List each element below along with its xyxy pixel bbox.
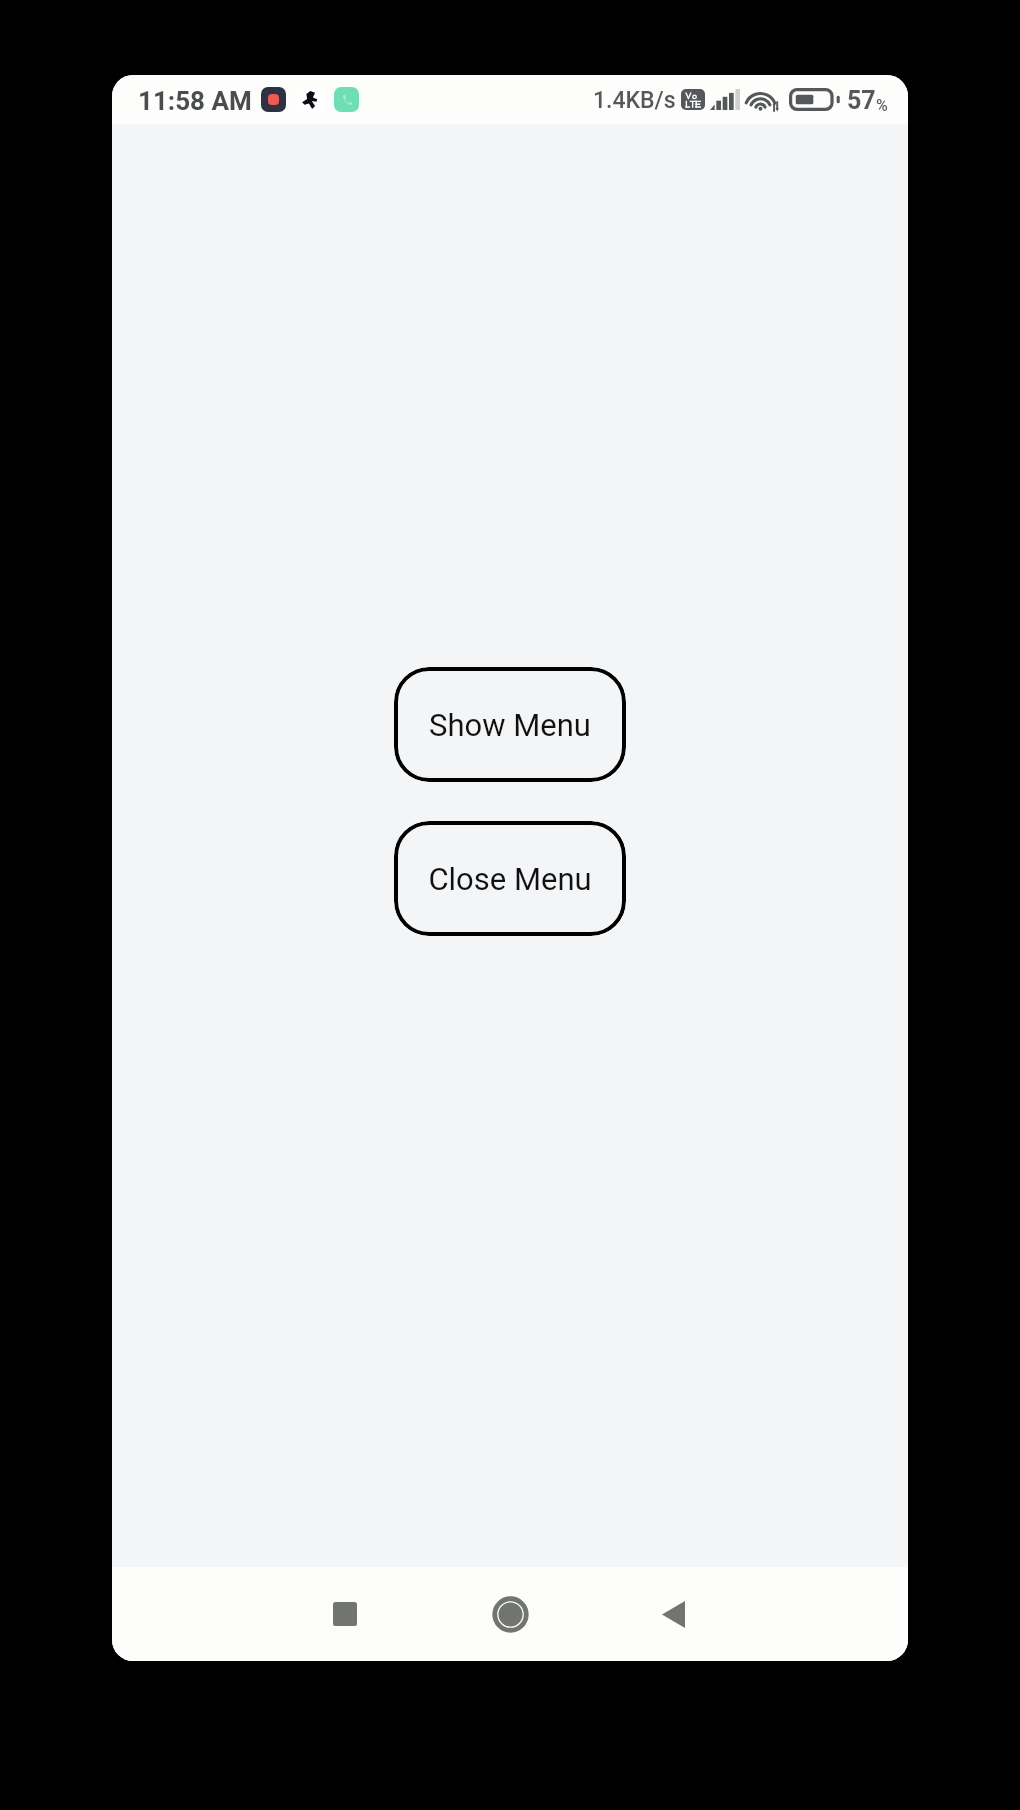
button[interactable]: Close Menu [394,821,626,936]
staticText: 1.4KB/s [593,87,676,114]
button[interactable]: Recent apps [262,1567,428,1661]
staticText: Close Menu [428,861,592,897]
button[interactable]: Show Menu [394,667,626,782]
staticText: Show Menu [429,707,591,743]
staticText: % [876,96,888,115]
staticText: 57 [847,86,876,115]
button[interactable]: Back [592,1567,754,1661]
staticText: 11:58 AM [138,86,252,116]
button[interactable]: Home [428,1567,592,1661]
